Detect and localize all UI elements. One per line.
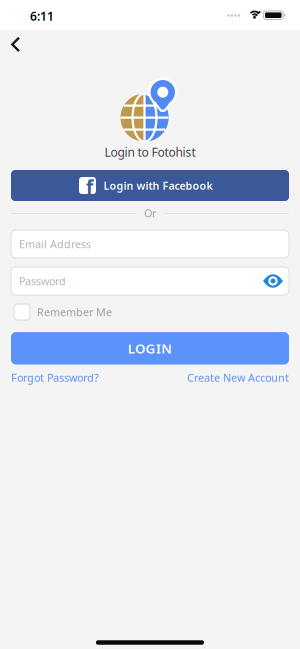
staticText: LOGIN — [128, 339, 172, 357]
button[interactable]: Forgot Password? — [11, 370, 99, 385]
button[interactable]: Back — [4, 35, 32, 55]
staticText: Forgot Password? — [11, 370, 99, 385]
staticText: Create New Account — [187, 370, 289, 385]
button[interactable]: Create New Account — [187, 370, 289, 385]
staticText: f — [86, 175, 93, 199]
button[interactable]: Show password — [261, 272, 285, 290]
staticText: Remember Me — [37, 305, 112, 319]
staticText: Login with Facebook — [103, 178, 212, 193]
staticText: Login to Fotohist — [104, 144, 195, 160]
staticText: Password — [19, 274, 66, 288]
staticText: 6:11 — [30, 8, 54, 24]
staticText: Email Address — [19, 237, 91, 251]
staticText: Or — [144, 206, 156, 220]
button[interactable]: LOGIN — [11, 332, 289, 365]
button[interactable]: f — [11, 170, 289, 201]
button[interactable]: Remember Me — [11, 302, 289, 322]
